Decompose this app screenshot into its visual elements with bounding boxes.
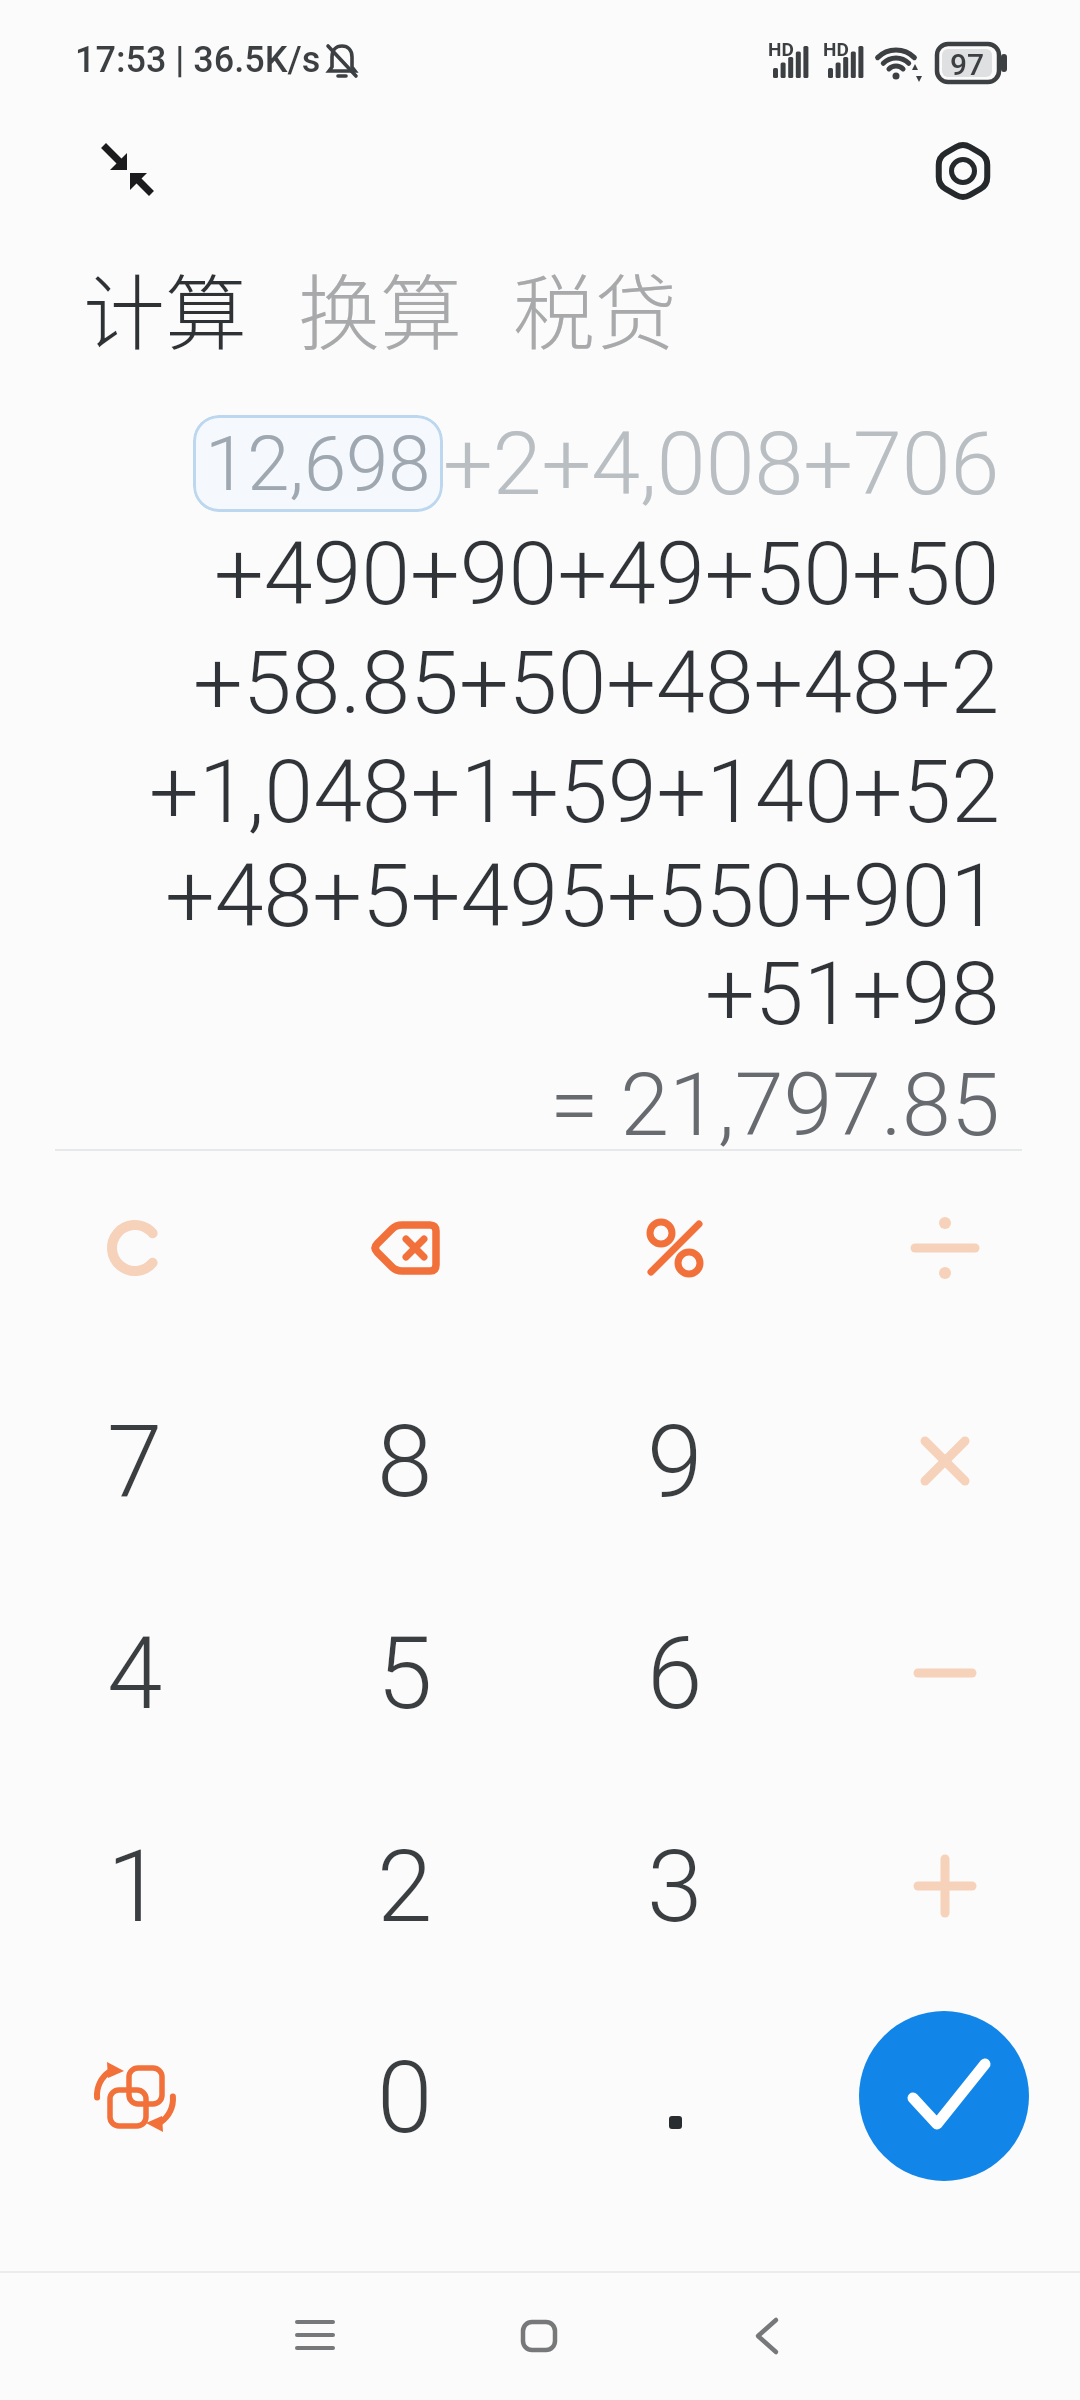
button[interactable]: 7	[0, 1355, 270, 1567]
staticText: 0	[377, 2039, 433, 2156]
staticText: +490+90+49+50+50	[214, 522, 1000, 625]
staticText: 计算	[83, 248, 248, 367]
staticText: +58.85+50+48+48+2	[193, 631, 1000, 734]
button[interactable]: 9	[540, 1355, 810, 1567]
button[interactable]: 2	[270, 1780, 540, 1992]
staticText: 1	[107, 1828, 163, 1945]
button[interactable]	[810, 1355, 1080, 1567]
button[interactable]	[90, 133, 164, 207]
staticText: 5	[377, 1615, 433, 1732]
staticText: HD	[823, 38, 849, 60]
staticText: 4	[107, 1615, 163, 1732]
staticText: +2+4,008+706	[443, 412, 1000, 515]
button[interactable]	[494, 2300, 584, 2372]
button[interactable]: 3	[540, 1780, 810, 1992]
staticText: +48+5+495+550+901	[165, 844, 1000, 947]
button[interactable]	[926, 134, 1000, 208]
staticText: 2	[377, 1828, 433, 1945]
staticText: 9	[647, 1403, 703, 1520]
button[interactable]: 8	[270, 1355, 540, 1567]
button[interactable]: 计算	[83, 248, 248, 367]
staticText: +1,048+1+59+140+52	[149, 740, 1000, 843]
button[interactable]	[270, 2300, 360, 2372]
button[interactable]	[810, 1780, 1080, 1992]
button[interactable]	[540, 1991, 810, 2203]
button[interactable]: 换算	[298, 248, 463, 367]
button[interactable]	[0, 1991, 270, 2203]
staticText: 6	[647, 1615, 703, 1732]
staticText: 换算	[298, 248, 463, 367]
button[interactable]: 税贷	[513, 248, 678, 367]
staticText: 7	[107, 1403, 163, 1520]
staticText: HD	[768, 38, 794, 60]
button[interactable]	[859, 2011, 1029, 2181]
staticText: 12,698	[205, 419, 431, 508]
button[interactable]	[540, 1142, 810, 1354]
button[interactable]: 0	[270, 1991, 540, 2203]
button[interactable]: 4	[0, 1567, 270, 1779]
staticText: 17:53 | 36.5K/s	[75, 39, 321, 81]
button[interactable]: 1	[0, 1780, 270, 1992]
staticText: 税贷	[513, 248, 678, 367]
button[interactable]: 6	[540, 1567, 810, 1779]
button[interactable]	[810, 1567, 1080, 1779]
staticText: +51+98	[705, 942, 1000, 1045]
button[interactable]	[810, 1142, 1080, 1354]
button[interactable]	[0, 1142, 270, 1354]
button[interactable]	[270, 1142, 540, 1354]
staticText: = 21,797.85	[550, 1053, 1000, 1156]
staticText: 8	[377, 1403, 433, 1520]
button[interactable]	[722, 2300, 812, 2372]
button[interactable]: 5	[270, 1567, 540, 1779]
staticText: 3	[647, 1828, 703, 1945]
staticText: 97	[950, 47, 985, 82]
